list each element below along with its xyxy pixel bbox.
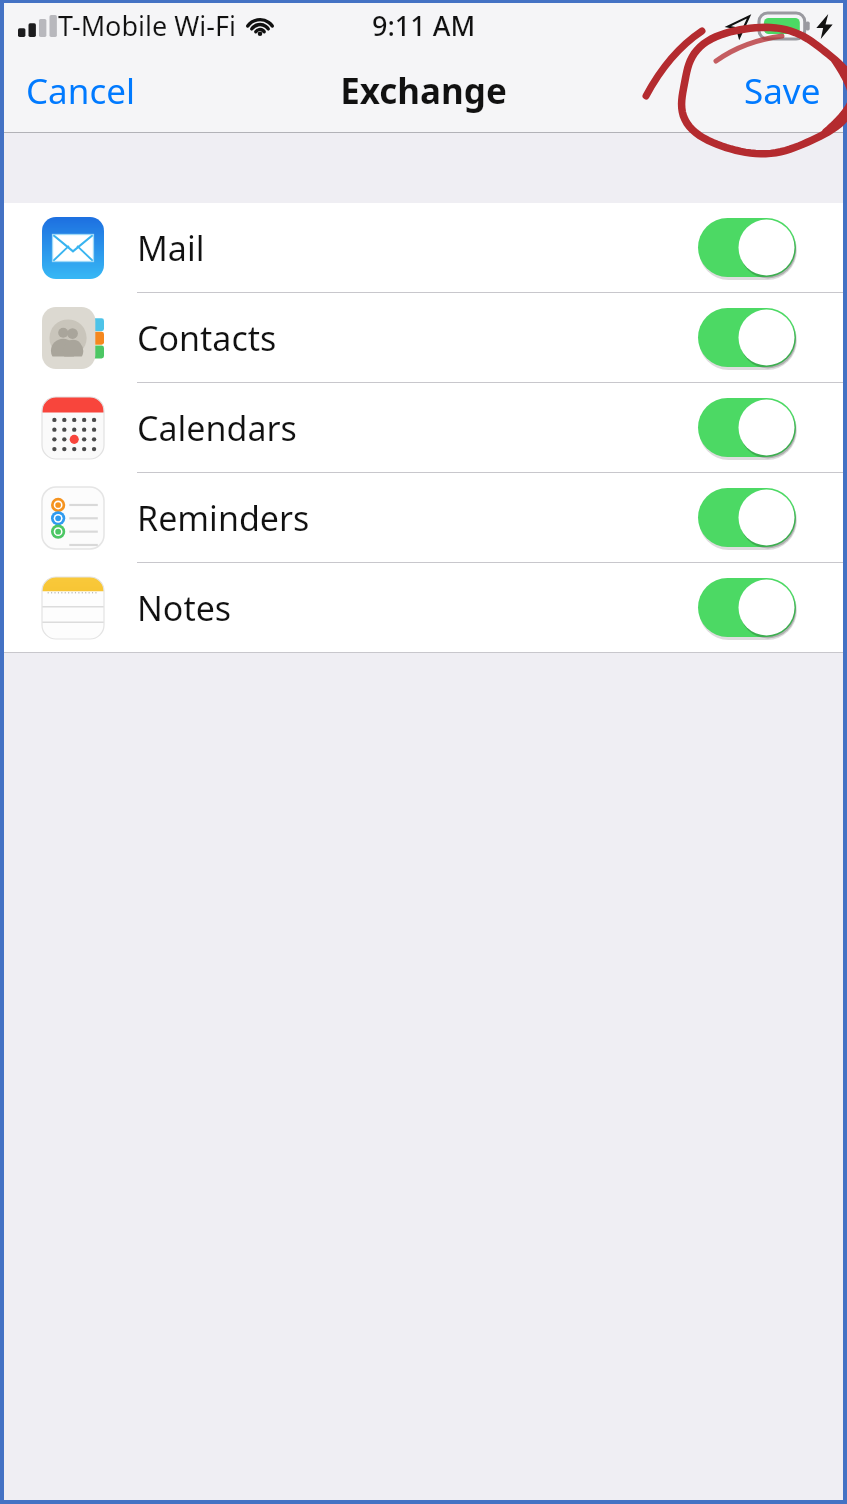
button[interactable]: Toggle <box>698 488 796 547</box>
button[interactable]: Save <box>722 55 843 127</box>
staticText: T-Mobile Wi-Fi <box>58 7 236 44</box>
staticText: Contacts <box>137 315 277 361</box>
button[interactable]: Calendars <box>4 383 843 472</box>
staticText: Cancel <box>26 67 135 115</box>
button[interactable]: Toggle <box>698 578 796 637</box>
button[interactable]: Notes <box>4 563 843 652</box>
staticText: Reminders <box>137 495 310 541</box>
button[interactable]: Toggle <box>698 218 796 277</box>
button[interactable]: Mail <box>4 203 843 292</box>
staticText: Mail <box>137 225 205 271</box>
staticText: Exchange <box>340 67 507 115</box>
button[interactable]: Contacts <box>4 293 843 382</box>
staticText: 9:11 AM <box>372 7 476 44</box>
button[interactable]: Cancel <box>4 55 157 127</box>
button[interactable]: Reminders <box>4 473 843 562</box>
button[interactable]: Toggle <box>698 308 796 367</box>
staticText: Save <box>744 67 821 115</box>
staticText: Calendars <box>137 405 297 451</box>
staticText: Notes <box>137 585 232 631</box>
button[interactable]: Toggle <box>698 398 796 457</box>
